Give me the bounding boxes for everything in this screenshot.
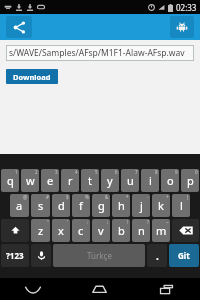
staticText: w	[26, 173, 35, 188]
staticText: ;	[107, 219, 109, 225]
staticText: h	[118, 198, 125, 213]
button[interactable]: e	[41, 169, 59, 192]
button[interactable]: Türkçe	[53, 244, 145, 267]
staticText: 5	[95, 169, 98, 175]
button[interactable]: s	[31, 194, 50, 217]
staticText: (	[187, 194, 189, 200]
staticText: e	[47, 173, 54, 188]
staticText: m	[156, 223, 167, 238]
staticText: 3	[55, 169, 58, 175]
staticText: c	[78, 223, 84, 238]
staticText: d	[58, 198, 65, 213]
staticText: ?123	[6, 250, 24, 261]
button[interactable]: j	[132, 194, 150, 217]
button[interactable]: App menu	[170, 16, 194, 38]
button[interactable]: u	[121, 169, 139, 192]
button[interactable]: Git	[169, 244, 199, 267]
button[interactable]: Recent apps	[133, 278, 200, 300]
staticText: #	[46, 194, 49, 200]
staticText: 02:33	[176, 2, 197, 13]
staticText: n	[138, 223, 145, 238]
staticText: l	[180, 198, 183, 213]
button[interactable]: c	[72, 219, 90, 242]
button[interactable]: Voice input	[31, 244, 51, 267]
staticText: 7	[135, 169, 138, 175]
button[interactable]: ?123	[1, 244, 29, 267]
staticText: 8	[155, 169, 158, 175]
button[interactable]: Shift	[1, 219, 29, 242]
staticText: "	[47, 219, 49, 225]
button[interactable]: Home	[66, 278, 133, 300]
button[interactable]: t	[81, 169, 99, 192]
button[interactable]: o	[161, 169, 179, 192]
staticText: g	[98, 198, 105, 213]
staticText: k	[158, 198, 164, 213]
staticText: t	[88, 173, 92, 188]
staticText: *	[126, 194, 129, 200]
staticText: 9	[175, 169, 178, 175]
staticText: Türkçe	[87, 250, 112, 261]
staticText: !	[127, 219, 129, 225]
staticText: p	[187, 173, 194, 188]
staticText: u	[127, 173, 134, 188]
staticText: -	[147, 194, 149, 200]
staticText: :	[87, 219, 89, 225]
staticText: x	[58, 223, 64, 238]
button[interactable]: b	[112, 219, 130, 242]
button[interactable]: f	[72, 194, 90, 217]
button[interactable]: a	[10, 194, 29, 217]
staticText: .	[156, 249, 159, 263]
staticText: y	[107, 173, 113, 188]
staticText: i	[149, 173, 152, 188]
button[interactable]: l	[172, 194, 190, 217]
button[interactable]: y	[101, 169, 119, 192]
staticText: f	[79, 198, 83, 213]
button[interactable]: x	[52, 219, 70, 242]
staticText: %	[85, 194, 89, 200]
staticText: r	[68, 173, 73, 188]
button[interactable]: v	[92, 219, 110, 242]
button[interactable]: m	[152, 219, 170, 242]
staticText: Git	[178, 250, 190, 261]
button[interactable]: q	[1, 169, 19, 192]
button[interactable]: Share	[6, 16, 32, 38]
staticText: s/WAVE/Samples/AFsp/M1F1-Alaw-AFsp.wav	[9, 47, 185, 59]
staticText: j	[140, 198, 143, 213]
button[interactable]: w	[21, 169, 39, 192]
button[interactable]: Download	[6, 69, 58, 84]
button[interactable]: z	[31, 219, 50, 242]
button[interactable]: Backspace	[172, 219, 199, 242]
staticText: 1	[15, 169, 18, 175]
staticText: q	[7, 173, 14, 188]
button[interactable]: p	[181, 169, 199, 192]
staticText: b	[118, 223, 125, 238]
button[interactable]: s/WAVE/Samples/AFsp/M1F1-Alaw-AFsp.wav	[6, 45, 194, 61]
staticText: @	[23, 194, 28, 200]
staticText: a	[16, 198, 23, 213]
staticText: z	[38, 223, 44, 238]
staticText: 4	[75, 169, 78, 175]
button[interactable]: .	[147, 244, 167, 267]
staticText: o	[167, 173, 174, 188]
staticText: 2	[35, 169, 38, 175]
staticText: v	[98, 223, 104, 238]
button[interactable]: Back	[0, 278, 66, 300]
staticText: ?	[147, 219, 149, 225]
staticText: ~	[166, 219, 169, 225]
staticText: +	[166, 194, 169, 200]
button[interactable]: n	[132, 219, 150, 242]
button[interactable]: d	[52, 194, 70, 217]
staticText: &	[105, 194, 109, 200]
staticText: $	[66, 194, 69, 200]
button[interactable]: g	[92, 194, 110, 217]
staticText: Download	[13, 72, 51, 82]
staticText: s	[38, 198, 44, 213]
button[interactable]: h	[112, 194, 130, 217]
button[interactable]: k	[152, 194, 170, 217]
button[interactable]: i	[141, 169, 159, 192]
staticText: 6	[115, 169, 118, 175]
button[interactable]: r	[61, 169, 79, 192]
staticText: 0	[195, 169, 198, 175]
staticText: '	[67, 219, 69, 225]
